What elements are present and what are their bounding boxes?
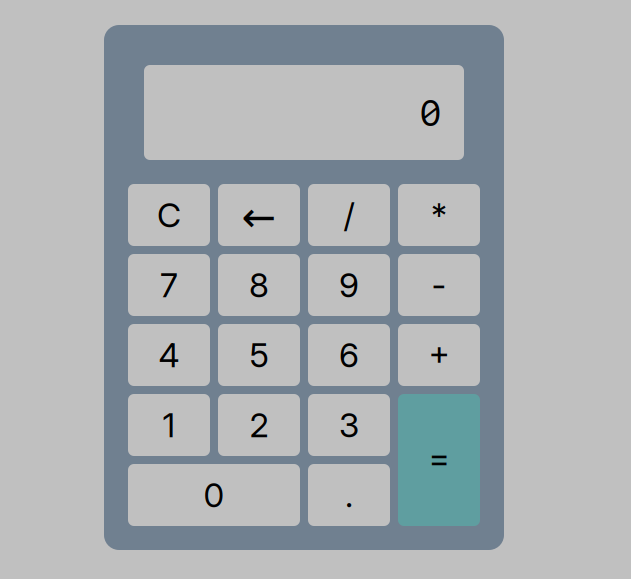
button[interactable]: 1 — [128, 394, 210, 456]
button[interactable]: 4 — [128, 324, 210, 386]
staticText: C — [157, 195, 181, 235]
staticText: / — [343, 195, 354, 235]
button[interactable]: 9 — [308, 254, 390, 316]
staticText: 5 — [249, 335, 268, 375]
staticText: = — [428, 438, 449, 478]
button[interactable]: / — [308, 184, 390, 246]
staticText: 7 — [160, 265, 178, 305]
button[interactable]: C — [128, 184, 210, 246]
button[interactable]: * — [398, 184, 480, 246]
button[interactable]: . — [308, 464, 390, 526]
button[interactable]: 6 — [308, 324, 390, 386]
staticText: + — [428, 333, 449, 373]
staticText: ← — [241, 193, 276, 241]
button[interactable]: 5 — [218, 324, 300, 386]
button[interactable]: 0 — [128, 464, 300, 526]
staticText: 0 — [203, 475, 224, 515]
staticText: 8 — [249, 265, 269, 305]
staticText: 3 — [339, 405, 359, 445]
button[interactable]: 8 — [218, 254, 300, 316]
staticText: 6 — [339, 335, 359, 375]
staticText: 9 — [339, 265, 359, 305]
button[interactable]: - — [398, 254, 480, 316]
button[interactable]: = — [398, 394, 480, 526]
staticText: 2 — [249, 405, 268, 445]
button[interactable]: 2 — [218, 394, 300, 456]
button[interactable]: ← — [218, 184, 300, 246]
staticText: * — [431, 195, 447, 235]
staticText: 0 — [419, 85, 442, 136]
button[interactable]: 7 — [128, 254, 210, 316]
staticText: 1 — [162, 405, 175, 445]
button[interactable]: + — [398, 324, 480, 386]
staticText: 4 — [158, 335, 179, 375]
staticText: . — [345, 475, 353, 515]
staticText: - — [431, 265, 446, 305]
button[interactable]: 3 — [308, 394, 390, 456]
